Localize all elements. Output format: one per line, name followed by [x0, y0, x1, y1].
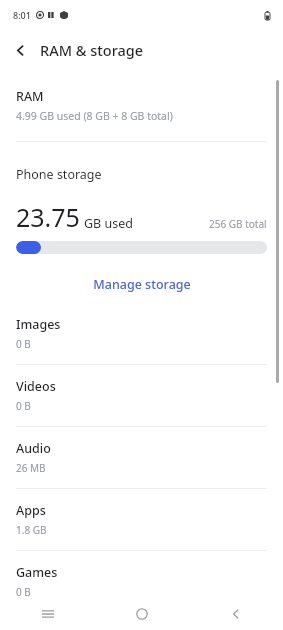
button[interactable]: Apps — [0, 489, 283, 551]
staticText: 26 MB — [16, 461, 46, 475]
staticText: Videos — [16, 378, 56, 395]
staticText: Apps — [16, 502, 46, 519]
button[interactable]: Back — [189, 598, 283, 630]
staticText: 256 GB total — [209, 217, 267, 231]
staticText: 1.8 GB — [16, 523, 47, 537]
staticText: Phone storage — [16, 166, 102, 183]
staticText: 23.75 — [16, 200, 80, 234]
staticText: 0 B — [16, 399, 31, 413]
button[interactable]: Back — [0, 30, 40, 70]
button[interactable]: Home — [95, 598, 189, 630]
button[interactable]: Videos — [0, 365, 283, 427]
staticText: RAM — [16, 88, 44, 105]
staticText: 8:01 — [13, 9, 31, 21]
button[interactable]: Games — [0, 551, 283, 598]
button[interactable]: RAM — [0, 70, 283, 142]
staticText: 0 B — [16, 585, 31, 598]
staticText: Games — [16, 564, 58, 581]
staticText: Manage storage — [93, 276, 191, 293]
button[interactable]: Recent apps — [0, 598, 95, 630]
button[interactable]: Images — [0, 303, 283, 365]
staticText: 4.99 GB used (8 GB + 8 GB total) — [16, 109, 173, 123]
staticText: Images — [16, 316, 61, 333]
staticText: Audio — [16, 440, 51, 457]
staticText: GB used — [84, 215, 133, 232]
staticText: 0 B — [16, 337, 31, 351]
button[interactable]: Audio — [0, 427, 283, 489]
staticText: RAM & storage — [40, 40, 144, 60]
button[interactable]: Manage storage — [0, 266, 283, 303]
